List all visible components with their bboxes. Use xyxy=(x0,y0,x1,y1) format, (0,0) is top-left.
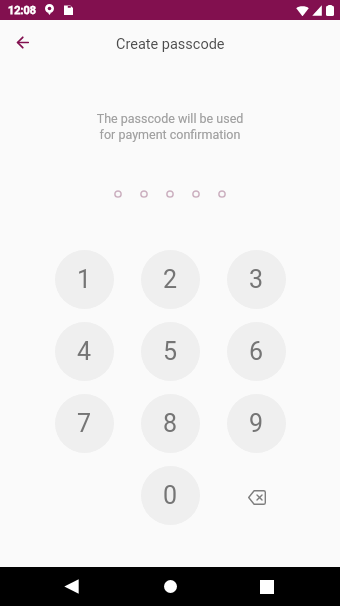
button[interactable]: 8 xyxy=(141,394,200,453)
staticText: 1 xyxy=(77,265,92,294)
button[interactable]: Recents xyxy=(247,567,286,606)
button[interactable]: Back xyxy=(8,28,36,56)
staticText: 7 xyxy=(77,409,92,438)
staticText: 4 xyxy=(77,337,92,366)
button[interactable]: 4 xyxy=(55,322,114,381)
button[interactable]: 0 xyxy=(141,466,200,525)
button[interactable]: 3 xyxy=(227,250,286,309)
staticText: 12:08 xyxy=(8,4,36,17)
button[interactable]: 7 xyxy=(55,394,114,453)
button[interactable]: 1 xyxy=(55,250,114,309)
button[interactable]: 5 xyxy=(141,322,200,381)
staticText: 6 xyxy=(249,337,264,366)
staticText: 3 xyxy=(249,265,264,294)
staticText: The passcode will be used for payment co… xyxy=(0,111,340,142)
staticText: 2 xyxy=(163,265,178,294)
staticText: 9 xyxy=(249,409,264,438)
staticText: 0 xyxy=(163,481,178,510)
button[interactable]: Backspace xyxy=(227,466,286,525)
button[interactable]: Back xyxy=(52,567,91,606)
staticText: 5 xyxy=(163,337,178,366)
button[interactable]: 2 xyxy=(141,250,200,309)
staticText: Create passcode xyxy=(116,36,225,53)
button[interactable]: 9 xyxy=(227,394,286,453)
button[interactable]: Home xyxy=(151,567,190,606)
button[interactable]: 6 xyxy=(227,322,286,381)
staticText: 8 xyxy=(163,409,178,438)
